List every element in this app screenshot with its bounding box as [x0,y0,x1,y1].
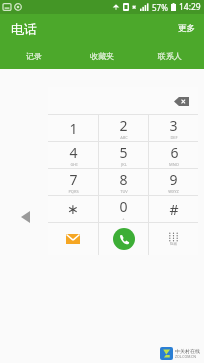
button[interactable]: Message [48,223,98,255]
staticText: DEF [170,135,178,140]
staticText: 0 [119,197,128,216]
button[interactable]: Keypad [149,223,198,255]
staticText: 57% [152,2,168,13]
staticText: 9 [169,170,178,189]
button[interactable]: Expand [14,206,36,228]
staticText: 联系人 [158,51,182,61]
button[interactable]: 5 [99,142,148,168]
staticText: ∗ [67,201,79,217]
staticText: GHI [70,162,78,167]
staticText: 更多 [178,23,195,34]
button[interactable]: Call [99,223,148,255]
button[interactable]: 9 [149,169,198,195]
button[interactable]: 更多 [169,14,204,43]
staticText: 6 [170,143,179,162]
button[interactable]: 7 [48,169,98,195]
staticText: ZOL.COM.CN [175,354,196,359]
button[interactable]: # [149,196,198,222]
button[interactable]: 1 [48,115,98,141]
staticText: ✖ [132,4,137,10]
button[interactable]: 3 [149,115,198,141]
staticText: 收藏夹 [90,51,114,61]
staticText: 14:29 [179,1,201,13]
button[interactable]: 联系人 [136,43,204,69]
staticText: 1 [69,119,78,138]
button[interactable]: 0 [99,196,148,222]
staticText: # [169,200,179,219]
button[interactable]: ∗ [48,196,98,222]
staticText: 记录 [26,51,42,61]
button[interactable]: 收藏夹 [68,43,136,69]
button[interactable]: Backspace [169,92,193,110]
staticText: 4 [69,143,78,162]
staticText: 3 [169,116,178,135]
staticText: PQRS [68,189,79,194]
staticText: JKL [121,162,127,167]
button[interactable]: 2 [99,115,148,141]
staticText: 隐藏 [170,242,177,246]
staticText: 中关村在线 [175,348,200,354]
button[interactable]: 4 [48,142,98,168]
staticText: ABC [120,135,128,140]
staticText: 5 [119,143,128,162]
staticText: 7 [69,170,78,189]
button[interactable]: 记录 [0,43,68,69]
staticText: + [122,216,125,221]
staticText: MNO [169,162,179,167]
button[interactable]: 6 [149,142,198,168]
staticText: WXYZ [168,189,179,194]
staticText: 电话 [11,21,37,37]
button[interactable]: 8 [99,169,148,195]
staticText: 2 [119,116,128,135]
staticText: TUV [120,189,128,194]
staticText: 8 [119,170,128,189]
